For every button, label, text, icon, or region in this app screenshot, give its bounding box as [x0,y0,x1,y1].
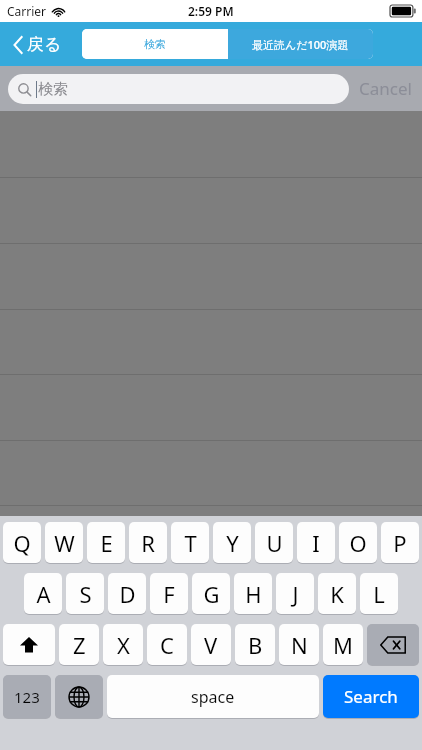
button[interactable]: Q [3,522,41,564]
staticText: C [160,630,174,660]
button[interactable]: 検索 [8,74,349,104]
button[interactable]: B [235,624,275,666]
staticText: B [248,630,263,660]
staticText: E [100,528,113,558]
button[interactable]: L [360,573,398,615]
staticText: S [79,579,92,609]
staticText: X [117,630,130,660]
staticText: Cancel [359,77,412,100]
button[interactable]: I [297,522,335,564]
staticText: M [333,630,353,660]
staticText: L [373,579,385,609]
button[interactable]: 最近読んだ100演題 [228,29,373,59]
staticText: Search [344,685,398,708]
button[interactable]: Y [213,522,251,564]
staticText: W [54,528,75,558]
button[interactable]: 123 [3,675,51,719]
staticText: Carrier [7,3,47,19]
staticText: O [349,528,367,558]
button[interactable]: Backspace [367,624,419,666]
staticText: 最近読んだ100演題 [252,37,349,52]
button[interactable]: O [339,522,377,564]
staticText: H [245,579,262,609]
staticText: Z [73,630,86,660]
staticText: 123 [14,687,40,707]
button[interactable]: V [191,624,231,666]
staticText: P [393,528,407,558]
staticText: 2:59 PM [188,3,234,19]
button[interactable]: Z [59,624,99,666]
button[interactable]: R [129,522,167,564]
button[interactable]: K [318,573,356,615]
staticText: N [291,630,308,660]
button[interactable]: Change keyboard [55,675,103,719]
button[interactable]: M [323,624,363,666]
button[interactable]: D [108,573,146,615]
button[interactable]: U [255,522,293,564]
staticText: Q [13,528,31,558]
button[interactable]: space [107,675,319,719]
button[interactable]: X [103,624,143,666]
staticText: F [163,579,175,609]
staticText: V [204,630,218,660]
staticText: T [184,528,197,558]
button[interactable]: G [192,573,230,615]
staticText: G [203,579,220,609]
button[interactable]: Shift [3,624,55,666]
staticText: A [36,579,51,609]
button[interactable]: A [24,573,62,615]
button[interactable]: E [87,522,125,564]
staticText: J [292,579,299,609]
staticText: I [312,528,320,558]
staticText: D [119,579,136,609]
button[interactable]: Search [323,675,419,719]
button[interactable]: Cancel [349,77,422,100]
staticText: 検索 [144,37,166,51]
button[interactable]: H [234,573,272,615]
staticText: space [191,686,235,708]
button[interactable]: C [147,624,187,666]
button[interactable]: 検索 [82,29,227,59]
button[interactable]: N [279,624,319,666]
button[interactable]: F [150,573,188,615]
staticText: 検索 [38,80,68,99]
button[interactable]: 戻る [0,28,76,61]
staticText: 戻る [27,34,62,55]
button[interactable]: W [45,522,83,564]
button[interactable]: T [171,522,209,564]
staticText: U [266,528,283,558]
button[interactable]: S [66,573,104,615]
staticText: R [141,528,155,558]
staticText: Y [226,528,239,558]
staticText: K [330,579,344,609]
button[interactable]: J [276,573,314,615]
button[interactable]: P [381,522,419,564]
